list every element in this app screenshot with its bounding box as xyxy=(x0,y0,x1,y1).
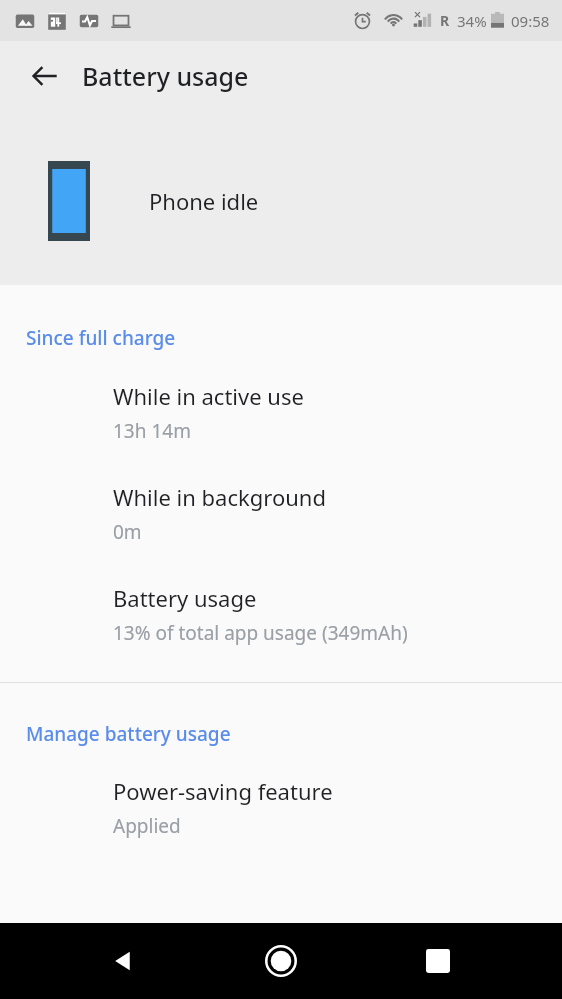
staticText: 09:58 xyxy=(511,11,550,31)
staticText: Since full charge xyxy=(26,325,176,351)
button[interactable]: Back xyxy=(14,45,76,107)
staticText: Manage battery usage xyxy=(26,721,231,747)
staticText: Applied xyxy=(113,813,181,839)
staticText: Battery usage xyxy=(113,583,257,613)
button[interactable]: Power-saving feature xyxy=(0,776,562,839)
button[interactable]: Since full charge xyxy=(0,325,562,351)
button[interactable]: While in background xyxy=(0,482,562,545)
staticText: 34% xyxy=(457,11,487,31)
staticText: 0m xyxy=(113,519,142,545)
button[interactable]: Manage battery usage xyxy=(0,721,562,747)
staticText: 13% of total app usage (349mAh) xyxy=(113,620,408,646)
button[interactable]: Battery usage xyxy=(0,583,562,646)
staticText: Phone idle xyxy=(149,186,259,216)
staticText: 13h 14m xyxy=(113,418,191,444)
staticText: R xyxy=(440,11,450,30)
button[interactable]: Home xyxy=(253,933,309,989)
button[interactable]: Back xyxy=(96,933,152,989)
staticText: Battery usage xyxy=(82,59,249,93)
button[interactable]: Recent apps xyxy=(410,933,466,989)
staticText: While in active use xyxy=(113,381,304,411)
staticText: Power-saving feature xyxy=(113,776,333,806)
button[interactable]: While in active use xyxy=(0,381,562,444)
staticText: While in background xyxy=(113,482,326,512)
